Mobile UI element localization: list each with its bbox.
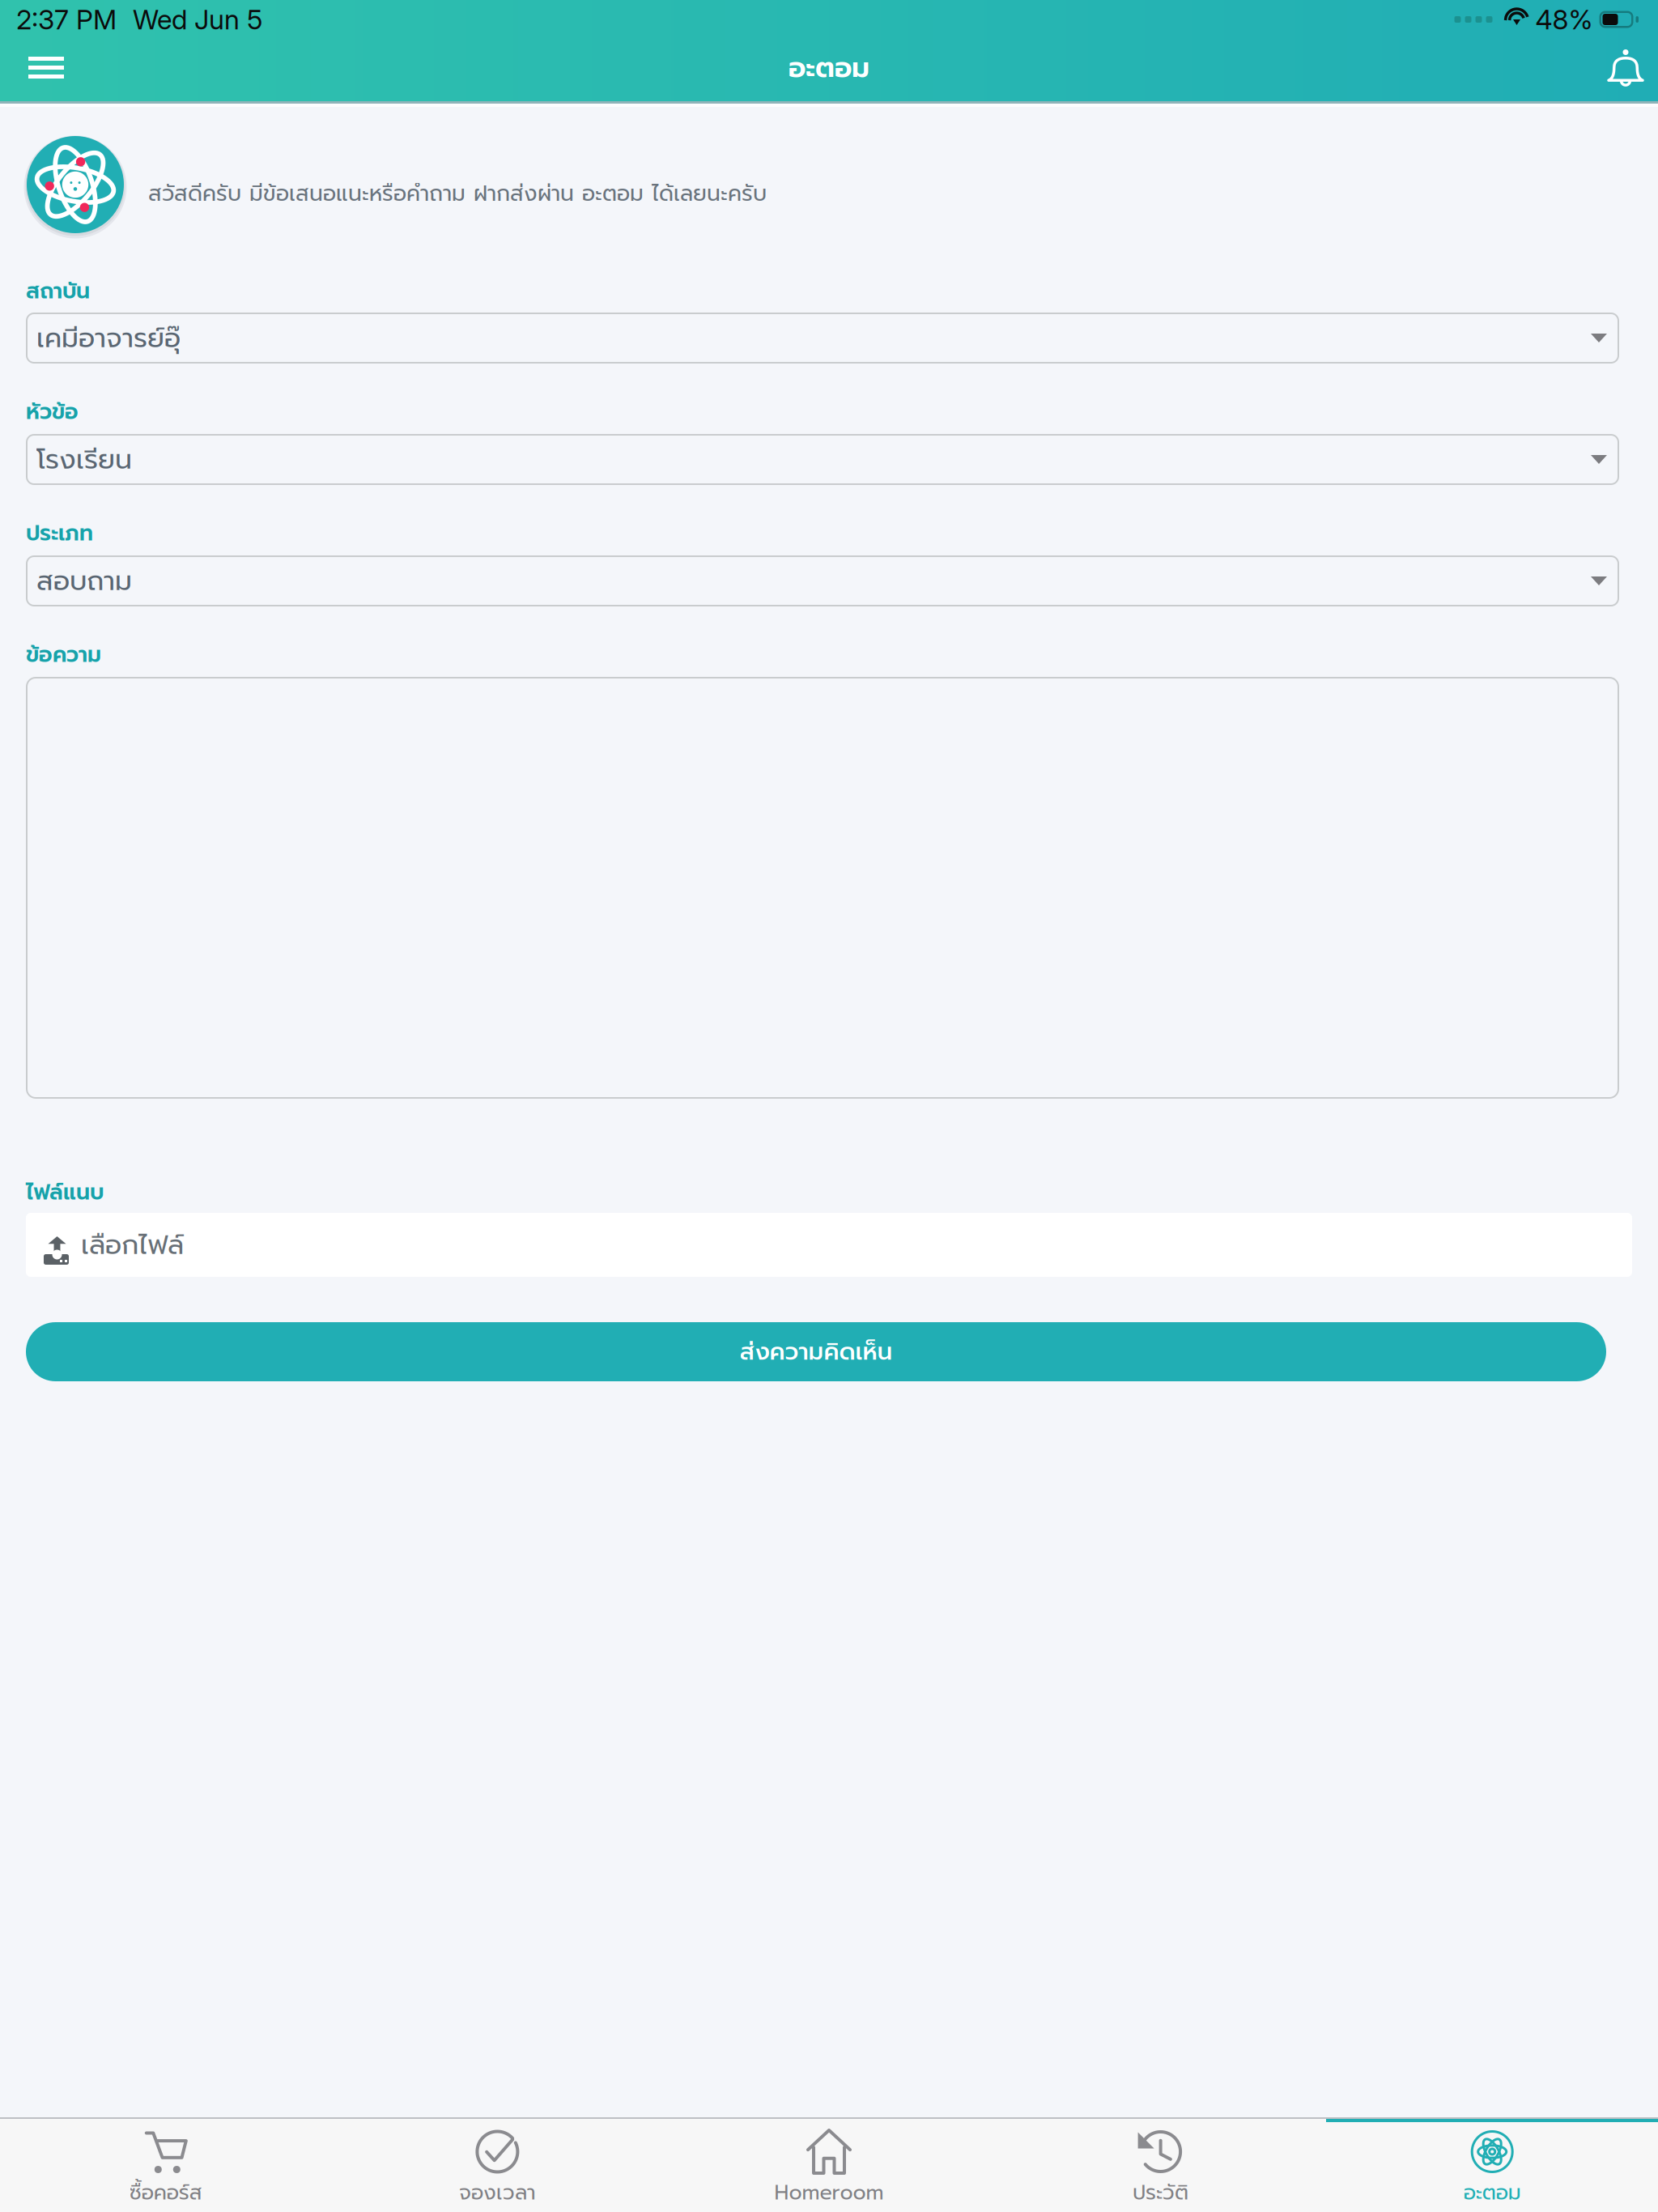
- staticText: อะตอม: [1463, 2177, 1521, 2208]
- staticText: โรงเรียน: [36, 439, 132, 480]
- staticText: หัวข้อ: [26, 395, 79, 428]
- staticText: เคมีอาจารย์อุ๊: [36, 318, 181, 358]
- staticText: 2:37 PM: [16, 3, 117, 36]
- button[interactable]: เคมีอาจารย์อุ๊: [26, 313, 1619, 364]
- button[interactable]: สอบถาม: [26, 555, 1619, 606]
- staticText: 48%: [1535, 3, 1593, 36]
- staticText: Homeroom: [774, 2177, 884, 2208]
- button[interactable]: Homeroom: [663, 2117, 995, 2212]
- button[interactable]: Menu: [0, 42, 87, 98]
- staticText: เลือกไฟล์: [81, 1224, 184, 1265]
- staticText: ไฟล์แนบ: [26, 1176, 104, 1209]
- staticText: ข้อความ: [26, 638, 101, 671]
- staticText: สวัสดีครับ มีข้อเสนอแนะหรือคำถาม ฝากส่งผ…: [148, 177, 767, 210]
- staticText: ประเภท: [26, 517, 93, 549]
- staticText: สถาบัน: [26, 275, 90, 307]
- button[interactable]: จองเวลา: [332, 2117, 663, 2212]
- button[interactable]: ประวัติ: [995, 2117, 1326, 2212]
- staticText: อะตอม: [789, 46, 869, 89]
- staticText: ส่งความคิดเห็น: [740, 1334, 893, 1370]
- staticText: ซื้อคอร์ส: [129, 2177, 202, 2208]
- staticText: จองเวลา: [459, 2177, 536, 2208]
- button[interactable]: โรงเรียน: [26, 434, 1619, 485]
- staticText: Wed Jun 5: [133, 3, 262, 36]
- button[interactable]: ส่งความคิดเห็น: [26, 1322, 1658, 1381]
- staticText: ประวัติ: [1133, 2177, 1189, 2208]
- staticText: สอบถาม: [36, 561, 132, 601]
- button[interactable]: Notifications: [1589, 39, 1658, 101]
- button[interactable]: อะตอม: [1326, 2117, 1658, 2212]
- button[interactable]: เลือกไฟล์: [26, 1213, 1658, 1277]
- button[interactable]: ซื้อคอร์ส: [0, 2117, 332, 2212]
